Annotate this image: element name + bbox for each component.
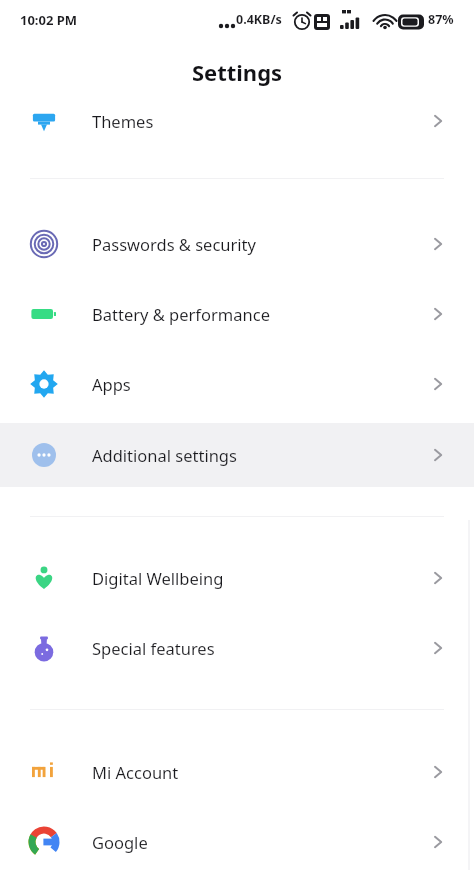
staticText: Google <box>92 831 148 853</box>
staticText: Themes <box>92 110 154 132</box>
staticText: 87% <box>428 11 454 28</box>
other: Apps <box>29 369 59 399</box>
button[interactable]: Passwords & security <box>0 215 474 273</box>
other: Google <box>29 827 59 857</box>
staticText: Special features <box>92 637 215 659</box>
button[interactable]: Digital Wellbeing <box>0 549 474 607</box>
staticText: Additional settings <box>92 444 237 466</box>
other: Additional settings <box>29 440 59 470</box>
other: Mi Account <box>29 757 59 787</box>
staticText: 10:02 PM <box>20 11 78 29</box>
button[interactable]: Google <box>0 813 474 871</box>
other: Themes <box>29 106 59 136</box>
staticText: Settings <box>0 57 474 87</box>
staticText: Passwords & security <box>92 233 256 255</box>
staticText: Mi Account <box>92 761 179 783</box>
button[interactable]: Apps <box>0 355 474 413</box>
staticText: Battery & performance <box>92 303 270 325</box>
button[interactable]: Battery & performance <box>0 285 474 343</box>
other: Digital Wellbeing <box>29 563 59 593</box>
staticText: Digital Wellbeing <box>92 567 224 589</box>
button[interactable]: Additional settings <box>0 423 474 487</box>
other: Passwords & security <box>29 229 59 259</box>
button[interactable]: Mi Account <box>0 743 474 801</box>
staticText: Apps <box>92 373 131 395</box>
button[interactable]: Themes <box>0 92 474 150</box>
other: Special features <box>29 633 59 663</box>
other: Battery & performance <box>29 299 59 329</box>
button[interactable]: Special features <box>0 619 474 677</box>
staticText: 0.4KB/s <box>236 11 282 28</box>
